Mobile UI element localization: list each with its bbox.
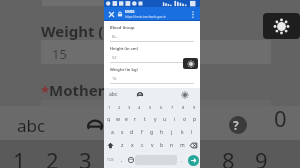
staticText: b bbox=[160, 142, 164, 149]
staticText: p bbox=[193, 116, 197, 123]
button[interactable]: Close bbox=[106, 9, 117, 20]
staticText: 1 bbox=[108, 105, 111, 110]
button[interactable]: s bbox=[117, 126, 127, 139]
button[interactable]: g bbox=[147, 126, 157, 139]
button[interactable]: 4 bbox=[134, 101, 145, 113]
staticText: u bbox=[163, 116, 167, 123]
button[interactable]: w bbox=[113, 113, 122, 126]
staticText: 9 bbox=[255, 145, 268, 168]
button[interactable]: Height (in cm) bbox=[110, 46, 194, 63]
staticText: v bbox=[151, 142, 154, 149]
staticText: t bbox=[144, 116, 146, 123]
button[interactable]: r bbox=[131, 113, 140, 126]
staticText: 3 bbox=[128, 105, 131, 110]
button[interactable]: u bbox=[160, 113, 170, 126]
button[interactable]: x bbox=[127, 139, 137, 152]
button[interactable]: 1 bbox=[104, 101, 114, 113]
button[interactable]: i bbox=[170, 113, 180, 126]
staticText: 15 bbox=[52, 45, 67, 63]
staticText: 3 bbox=[79, 145, 92, 168]
staticText: abc bbox=[109, 91, 118, 98]
staticText: g bbox=[150, 129, 154, 136]
button[interactable]: , bbox=[117, 152, 126, 168]
button[interactable]: v bbox=[147, 139, 157, 152]
staticText: a bbox=[111, 129, 114, 136]
staticText: o bbox=[183, 116, 187, 123]
button[interactable]: o bbox=[180, 113, 190, 126]
staticText: 8 bbox=[222, 145, 235, 168]
button[interactable]: n bbox=[167, 139, 177, 152]
staticText: abc bbox=[17, 114, 46, 137]
button[interactable]: Emoji bbox=[126, 152, 135, 168]
button[interactable]: z bbox=[117, 139, 127, 152]
button[interactable]: . bbox=[177, 152, 186, 168]
button[interactable]: y bbox=[150, 113, 160, 126]
button[interactable]: Keyboard settings bbox=[181, 91, 189, 99]
staticText: * bbox=[41, 81, 50, 101]
button[interactable]: t bbox=[140, 113, 150, 126]
staticText: Height (in cm) bbox=[110, 46, 139, 51]
staticText: 6 bbox=[160, 105, 163, 110]
button[interactable]: e bbox=[122, 113, 131, 126]
staticText: ?123 bbox=[107, 158, 114, 162]
button[interactable]: k bbox=[177, 126, 187, 139]
button[interactable]: Settings bbox=[263, 13, 300, 39]
button[interactable]: Settings shortcut bbox=[183, 58, 198, 69]
button[interactable]: p bbox=[190, 113, 200, 126]
button[interactable]: Backspace bbox=[187, 139, 200, 152]
button[interactable]: m bbox=[177, 139, 187, 152]
staticText: https://emis.tnschools.gov.in bbox=[125, 15, 166, 19]
button[interactable]: f bbox=[137, 126, 147, 139]
button[interactable]: b bbox=[157, 139, 167, 152]
staticText: l bbox=[191, 129, 193, 136]
button[interactable]: 9 bbox=[189, 101, 200, 113]
button[interactable]: q bbox=[104, 113, 113, 126]
button[interactable]: 6 bbox=[156, 101, 167, 113]
staticText: f bbox=[141, 129, 143, 136]
staticText: 2 bbox=[46, 145, 59, 168]
button[interactable]: a bbox=[107, 126, 117, 139]
staticText: d bbox=[130, 129, 134, 136]
button[interactable]: Weight (in kg) bbox=[110, 67, 194, 84]
button[interactable]: Blood Group bbox=[110, 25, 194, 42]
button[interactable]: h bbox=[157, 126, 167, 139]
button[interactable]: 8 bbox=[178, 101, 189, 113]
button[interactable]: 5 bbox=[145, 101, 156, 113]
staticText: 5 bbox=[149, 105, 152, 110]
staticText: c bbox=[141, 142, 144, 149]
staticText: q bbox=[107, 116, 111, 123]
button[interactable]: c bbox=[137, 139, 147, 152]
staticText: r bbox=[134, 116, 137, 123]
button[interactable]: Shift bbox=[104, 139, 117, 152]
staticText: w bbox=[116, 116, 120, 123]
button[interactable]: l bbox=[187, 126, 197, 139]
button[interactable]: 7 bbox=[167, 101, 178, 113]
staticText: 4 bbox=[138, 105, 141, 110]
staticText: 7 bbox=[171, 105, 174, 110]
button[interactable]: 3 bbox=[124, 101, 134, 113]
staticText: . bbox=[181, 157, 183, 164]
button[interactable]: Tamil bbox=[136, 90, 145, 99]
button[interactable]: Enter bbox=[188, 155, 199, 166]
staticText: Blood Group bbox=[110, 25, 135, 30]
staticText: ? bbox=[233, 117, 239, 133]
button[interactable]: j bbox=[167, 126, 177, 139]
staticText: 2 bbox=[118, 105, 121, 110]
staticText: m bbox=[180, 142, 185, 149]
staticText: 0 bbox=[274, 103, 287, 133]
staticText: h bbox=[160, 129, 164, 136]
staticText: s bbox=[121, 129, 124, 136]
button[interactable]: d bbox=[127, 126, 137, 139]
button[interactable]: ?123 bbox=[104, 152, 117, 168]
staticText: Weight (in bbox=[41, 21, 118, 41]
staticText: 9 bbox=[193, 105, 196, 110]
button[interactable]: abc bbox=[109, 91, 118, 98]
staticText: j bbox=[171, 129, 173, 136]
button[interactable]: 2 bbox=[114, 101, 124, 113]
staticText: EMIS bbox=[125, 9, 135, 14]
staticText: e bbox=[125, 116, 128, 123]
staticText: z bbox=[121, 142, 124, 149]
staticText: 52 bbox=[112, 55, 117, 60]
button[interactable]: More options bbox=[187, 9, 198, 20]
